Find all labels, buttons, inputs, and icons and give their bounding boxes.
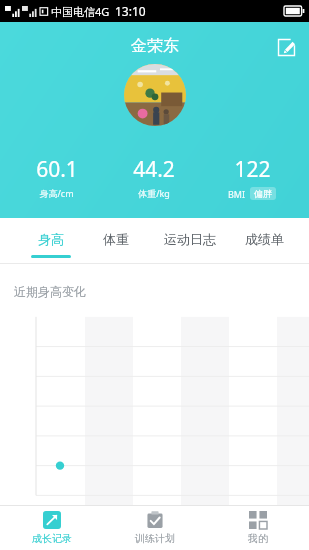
button[interactable]	[124, 64, 186, 126]
button[interactable]: 成长记录	[0, 506, 103, 550]
button[interactable]: 体重	[83, 218, 149, 264]
staticText: 成长记录	[32, 532, 72, 545]
staticText: 44.2	[133, 155, 175, 184]
staticText: 体重	[103, 231, 129, 247]
staticText: 运动日志	[164, 231, 216, 247]
button[interactable]: 身高	[18, 218, 83, 264]
staticText: 中国电信4G	[51, 4, 110, 19]
staticText: 偏胖	[254, 188, 272, 199]
staticText: 体重/kg	[138, 187, 170, 199]
button[interactable]: 44.2	[105, 155, 203, 199]
staticText: 金荣东	[131, 36, 179, 56]
button[interactable]: 训练计划	[103, 506, 206, 550]
staticText: 60.1	[36, 155, 78, 184]
staticText: 训练计划	[135, 532, 175, 545]
button[interactable]: 60.1	[8, 155, 105, 199]
staticText: BMI	[228, 188, 246, 200]
button[interactable]: 我的	[206, 506, 309, 550]
button[interactable]: 成绩单	[231, 218, 297, 264]
staticText: 身高	[38, 231, 64, 247]
staticText: 122	[234, 155, 271, 184]
staticText: 近期身高变化	[14, 284, 86, 299]
button[interactable]: 运动日志	[149, 218, 231, 264]
button[interactable]: 122	[203, 155, 301, 200]
staticText: 我的	[248, 532, 268, 545]
button[interactable]: 编辑	[271, 32, 301, 62]
staticText: 身高/cm	[39, 187, 74, 199]
staticText: 成绩单	[245, 231, 284, 247]
staticText: 13:10	[115, 3, 146, 19]
